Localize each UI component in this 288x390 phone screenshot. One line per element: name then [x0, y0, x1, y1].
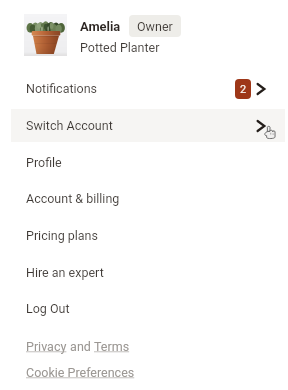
- staticText: Amelia: [80, 19, 121, 34]
- button[interactable]: Owner: [129, 15, 181, 37]
- button[interactable]: Log Out: [0, 290, 288, 327]
- button[interactable]: Cookie Preferences: [26, 365, 135, 380]
- staticText: Pricing plans: [26, 228, 98, 243]
- staticText: Profile: [26, 155, 62, 170]
- staticText: and: [67, 339, 94, 354]
- staticText: Account & billing: [26, 191, 120, 206]
- button[interactable]: Privacy: [26, 339, 67, 354]
- button[interactable]: Terms: [94, 339, 130, 354]
- button[interactable]: Account & billing: [0, 180, 288, 217]
- button[interactable]: Hire an expert: [0, 254, 288, 291]
- button[interactable]: Pricing plans: [0, 217, 288, 254]
- staticText: Owner: [137, 19, 173, 34]
- staticText: Potted Planter: [80, 40, 160, 55]
- staticText: Hire an expert: [26, 265, 104, 280]
- staticText: Switch Account: [26, 118, 113, 133]
- other: Open Notifications: [253, 81, 269, 97]
- staticText: 2: [240, 83, 247, 96]
- button[interactable]: Switch Account: [11, 109, 285, 142]
- button[interactable]: Profile: [0, 144, 288, 181]
- staticText: Log Out: [26, 301, 70, 316]
- staticText: Notifications: [26, 81, 98, 96]
- button[interactable]: Notifications: [0, 70, 288, 107]
- other: Open Switch Account: [253, 118, 269, 134]
